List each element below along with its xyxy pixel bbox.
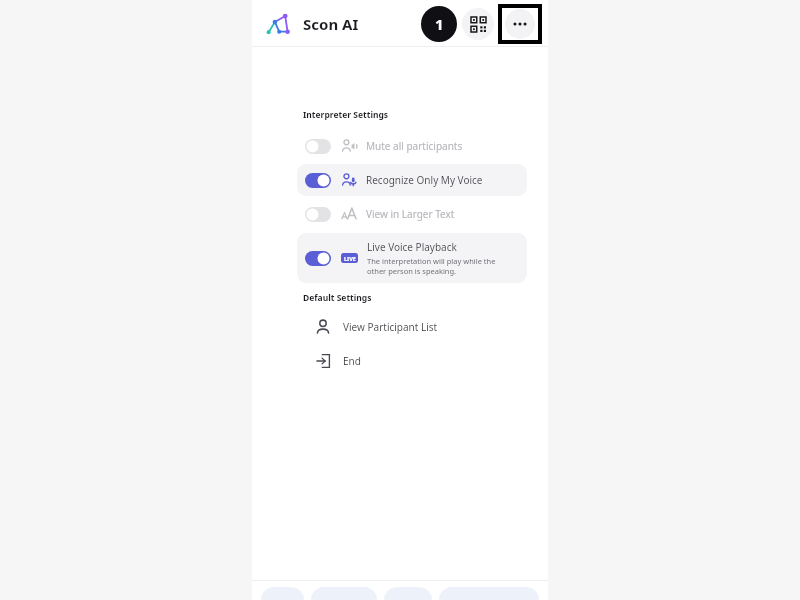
button[interactable]: View in Larger Text <box>297 198 527 230</box>
button[interactable]: Language <box>439 587 539 600</box>
button[interactable]: Scon AI logo <box>262 8 294 40</box>
staticText: LIVE <box>344 255 356 262</box>
staticText: View Participant List <box>343 320 438 334</box>
button[interactable]: Speak <box>311 587 377 600</box>
staticText: Scon AI <box>303 14 359 34</box>
button[interactable]: Participants: 1 <box>421 6 457 42</box>
staticText: View in Larger Text <box>366 207 455 221</box>
button[interactable]: Recognize Only My Voice <box>297 164 527 196</box>
staticText: Live Voice Playback <box>367 240 457 254</box>
staticText: Mute all participants <box>366 139 463 153</box>
button[interactable]: Show QR code <box>462 8 494 40</box>
button[interactable]: View Participant List <box>290 310 534 344</box>
button[interactable]: Keyboard <box>384 587 432 600</box>
staticText: Interpreter Settings <box>303 109 389 121</box>
staticText: 1 <box>435 14 444 34</box>
button[interactable]: More options <box>502 8 538 40</box>
staticText: End <box>343 354 361 368</box>
button[interactable]: Mute all participants <box>297 130 527 162</box>
staticText: other person is speaking. <box>367 266 457 276</box>
button[interactable]: LIVE <box>297 233 527 283</box>
staticText: Recognize Only My Voice <box>366 173 483 187</box>
button[interactable]: End <box>290 344 534 378</box>
staticText: Default Settings <box>303 292 372 304</box>
staticText: The interpretation will play while the <box>367 256 496 266</box>
button[interactable]: Microphone <box>261 587 304 600</box>
